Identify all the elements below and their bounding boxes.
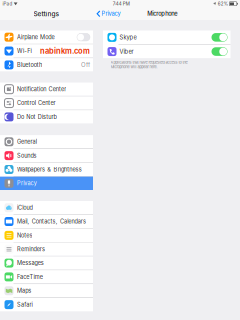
button[interactable]: Wallpapers & Brightness <box>0 163 93 176</box>
button[interactable]: Messages <box>0 256 93 270</box>
button[interactable]: Notes <box>0 229 93 242</box>
button[interactable]: Maps <box>0 284 93 297</box>
button[interactable]: Sounds <box>0 149 93 162</box>
staticText: Skype <box>119 34 136 41</box>
staticText: Airplane Mode <box>17 34 54 41</box>
staticText: 62% <box>218 1 228 6</box>
staticText: Control Center <box>17 100 55 106</box>
staticText: Off <box>81 61 90 68</box>
button[interactable]: Wi-Fi <box>0 44 93 58</box>
staticText: Privacy <box>17 180 37 187</box>
button[interactable]: iCloud <box>0 201 93 214</box>
staticText: iPad <box>2 1 12 6</box>
button[interactable]: Reminders <box>0 243 93 256</box>
staticText: iCloud <box>17 204 32 211</box>
button[interactable]: Control Center <box>0 96 93 110</box>
button[interactable]: FaceTime <box>0 270 93 283</box>
staticText: Notification Center <box>17 86 66 93</box>
staticText: General <box>17 138 37 145</box>
staticText: Reminders <box>17 246 45 253</box>
button[interactable]: Do Not Disturb <box>0 110 93 123</box>
button[interactable]: Privacy <box>93 7 120 20</box>
button[interactable]: Bluetooth <box>0 58 93 71</box>
button[interactable]: Skype <box>103 30 230 44</box>
staticText: FaceTime <box>17 273 43 280</box>
staticText: 7:44 PM <box>113 1 130 6</box>
button[interactable]: General <box>0 135 93 148</box>
staticText: Mail, Contacts, Calendars <box>17 218 86 225</box>
button[interactable]: Mail, Contacts, Calendars <box>0 215 93 228</box>
button[interactable]: Airplane Mode <box>0 30 93 44</box>
button[interactable]: Viber <box>103 45 230 58</box>
staticText: Wi-Fi <box>17 48 31 54</box>
button[interactable]: Safari <box>0 298 93 311</box>
button[interactable]: Privacy <box>0 177 93 190</box>
staticText: Settings <box>33 10 59 18</box>
staticText: Sounds <box>17 152 36 159</box>
staticText: nabinkm.com <box>40 46 90 55</box>
staticText: Maps <box>17 287 31 294</box>
staticText: Safari <box>17 301 32 308</box>
staticText: Do Not Disturb <box>17 113 56 120</box>
staticText: Bluetooth <box>17 61 42 68</box>
staticText: Wallpapers & Brightness <box>17 166 81 173</box>
staticText: Viber <box>119 48 133 55</box>
staticText: Applications that have requested access … <box>110 60 187 69</box>
button[interactable]: Notification Center <box>0 82 93 96</box>
staticText: Messages <box>17 260 44 266</box>
staticText: Microphone <box>147 10 177 17</box>
staticText: Privacy <box>101 10 120 17</box>
staticText: Notes <box>17 232 32 239</box>
